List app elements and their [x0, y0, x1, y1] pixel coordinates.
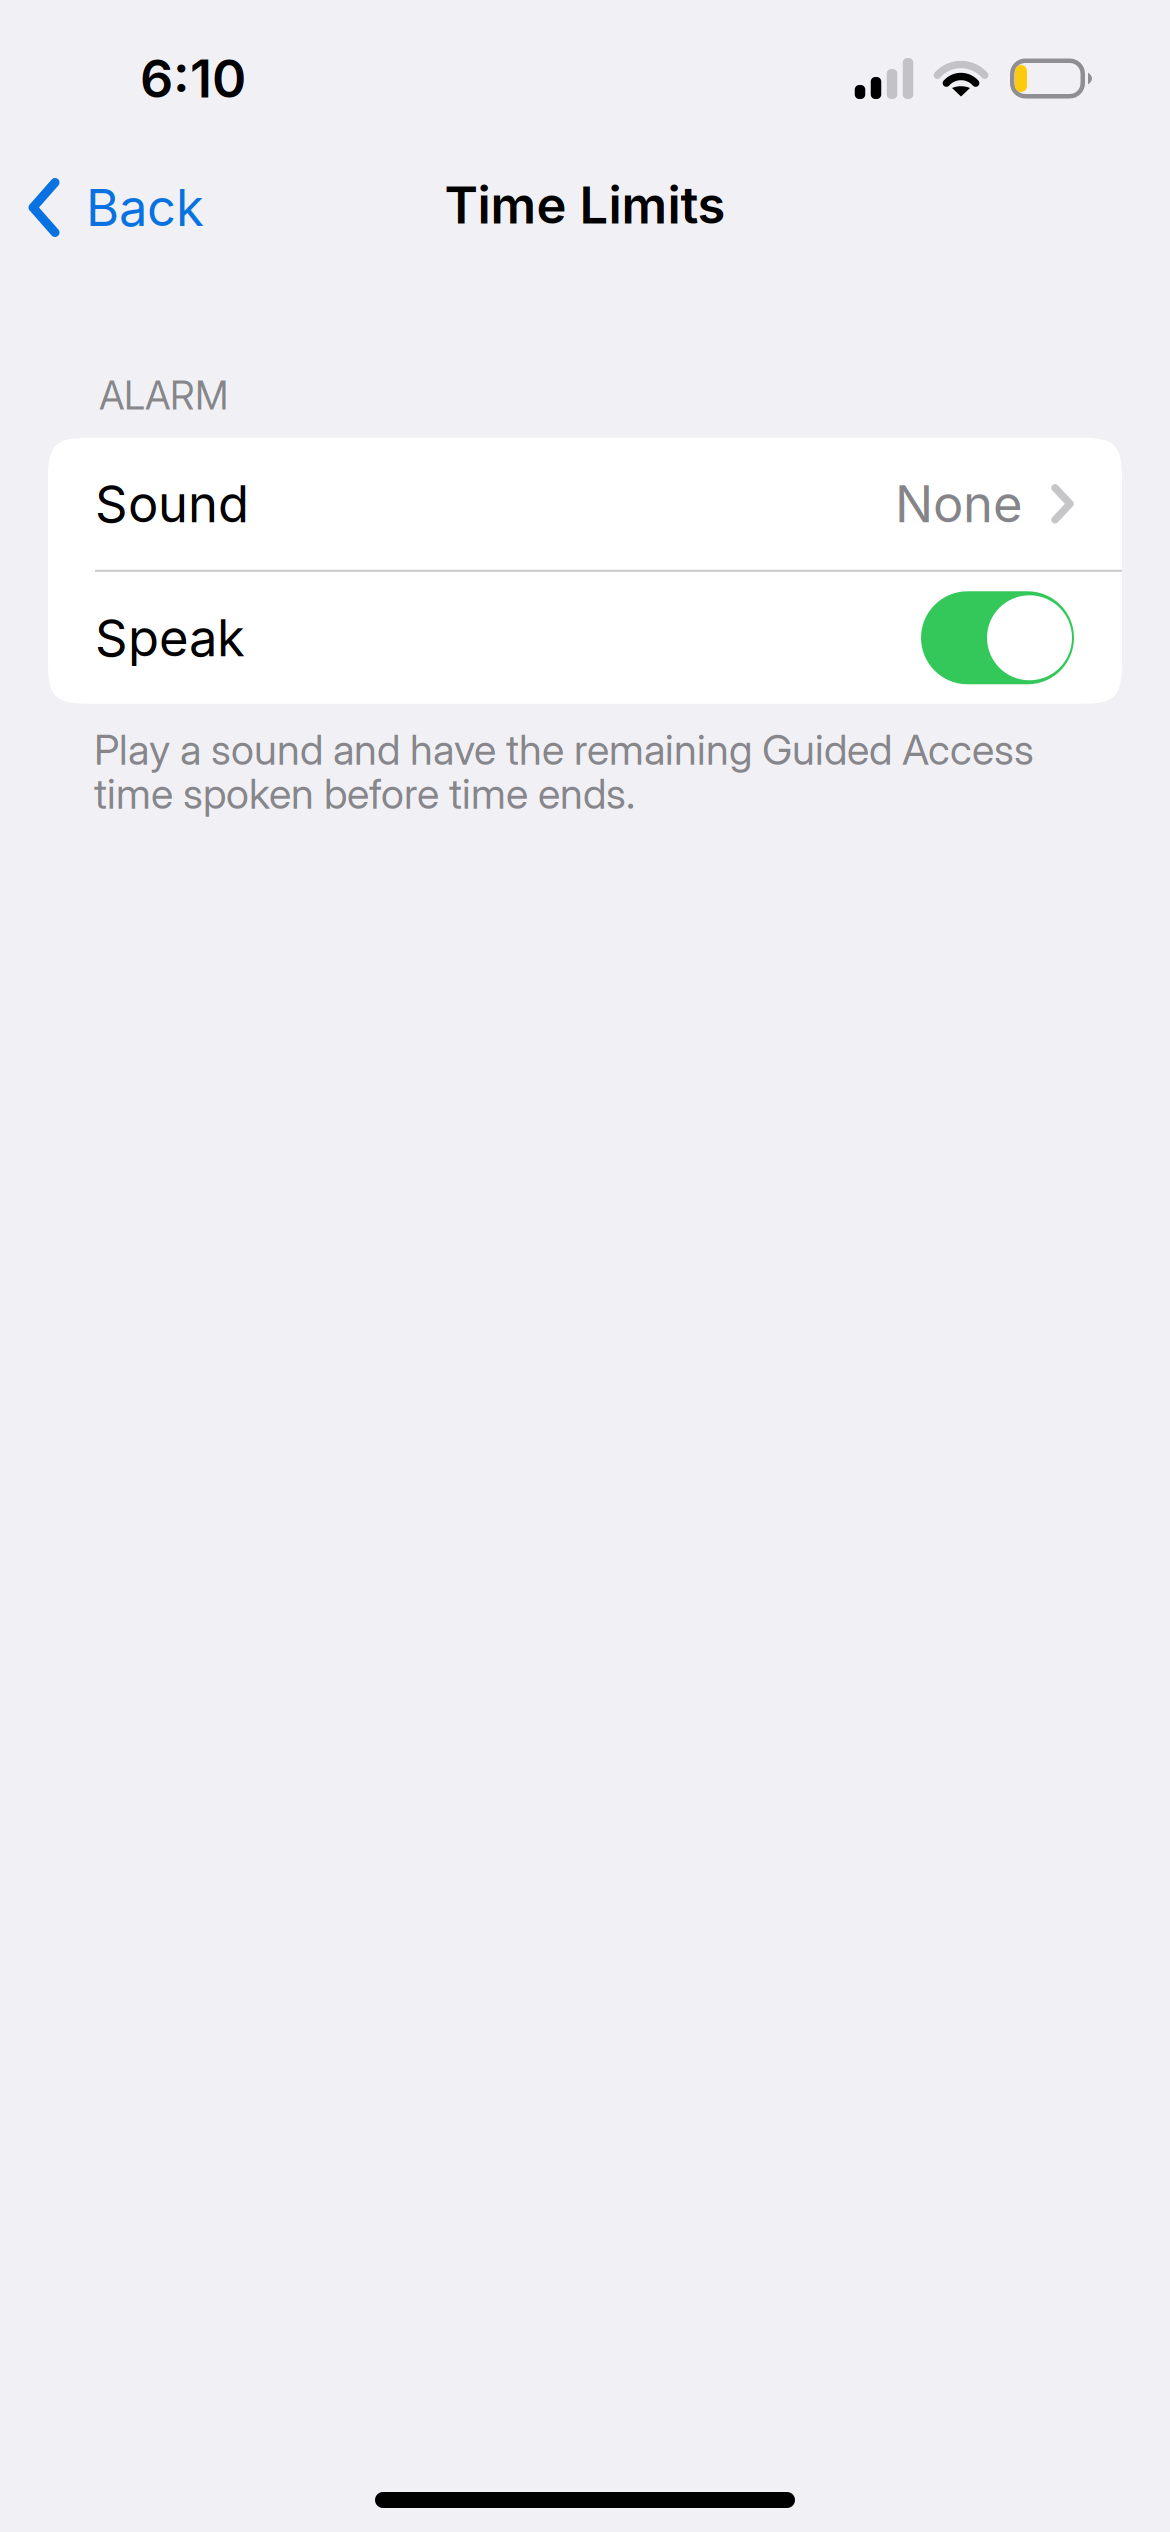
button[interactable]: Sound	[48, 438, 1122, 570]
button[interactable]: Back	[0, 140, 228, 270]
staticText: Back	[86, 177, 204, 238]
staticText: Sound	[95, 473, 249, 534]
staticText: ALARM	[99, 372, 228, 419]
staticText: None	[895, 473, 1023, 534]
button[interactable]: Speak, on	[921, 591, 1074, 684]
staticText: Speak	[95, 607, 245, 668]
staticText: Time Limits	[444, 174, 725, 236]
staticText: 6:10	[140, 47, 246, 110]
staticText: Play a sound and have the remaining Guid…	[94, 725, 1034, 819]
